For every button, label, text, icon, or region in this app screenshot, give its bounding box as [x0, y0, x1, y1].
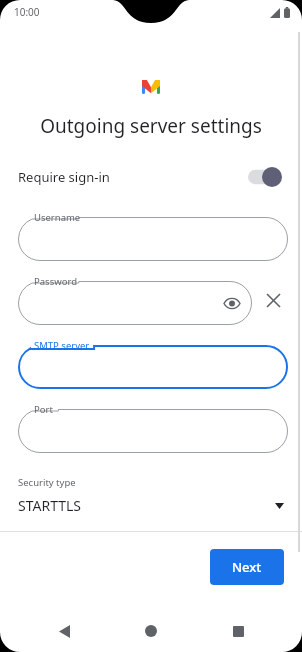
button[interactable]: Show password: [18, 274, 252, 325]
staticText: Security type: [18, 476, 76, 489]
button[interactable]: Require sign-in: [0, 161, 302, 193]
staticText: Next: [232, 558, 262, 576]
staticText: Password: [34, 275, 77, 288]
button[interactable]: Require sign-in toggle: [248, 167, 282, 187]
button[interactable]: Clear password: [258, 285, 288, 315]
staticText: Require sign-in: [18, 168, 248, 186]
staticText: Outgoing server settings: [12, 113, 290, 139]
button[interactable]: Show password: [220, 291, 244, 315]
button[interactable]: SMTP server: [18, 338, 288, 389]
button[interactable]: Security type: [0, 476, 302, 531]
button[interactable]: Home: [128, 610, 174, 652]
button[interactable]: Username: [18, 210, 288, 261]
button[interactable]: Recent apps: [215, 610, 261, 652]
staticText: 10:00: [14, 5, 40, 19]
staticText: SMTP server: [34, 339, 90, 352]
staticText: Username: [34, 211, 81, 224]
button[interactable]: Back: [41, 610, 87, 652]
staticText: Port: [34, 403, 53, 416]
button[interactable]: Next: [210, 549, 284, 585]
staticText: STARTTLS: [18, 496, 275, 515]
button[interactable]: Port: [18, 402, 288, 453]
